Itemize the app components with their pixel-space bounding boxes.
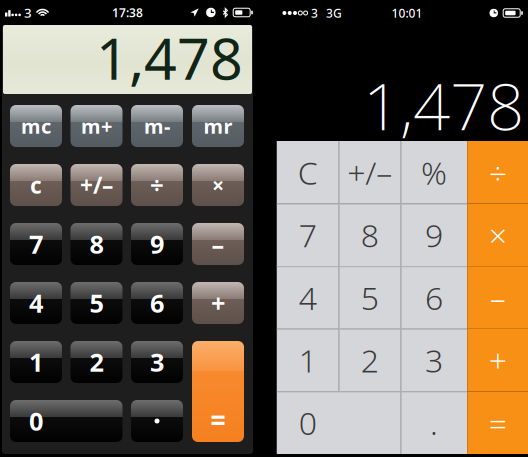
staticText: 8: [361, 214, 379, 256]
staticText: m-: [144, 113, 170, 139]
button[interactable]: =: [467, 391, 528, 454]
button[interactable]: ×: [192, 164, 244, 206]
staticText: 3: [24, 4, 32, 21]
staticText: C: [298, 151, 318, 194]
button[interactable]: 0: [10, 400, 122, 442]
staticText: mc: [21, 113, 51, 139]
staticText: +: [211, 286, 225, 320]
staticText: +: [489, 339, 507, 381]
button[interactable]: 4: [10, 282, 62, 324]
staticText: 9: [425, 214, 443, 256]
staticText: 1,478: [96, 19, 243, 95]
staticText: 3G: [326, 5, 342, 21]
staticText: =: [489, 401, 507, 444]
staticText: 9: [150, 227, 164, 261]
staticText: 6: [425, 276, 443, 319]
staticText: +/–: [347, 151, 392, 194]
button[interactable]: +: [467, 329, 528, 391]
button[interactable]: m+: [70, 105, 122, 147]
staticText: 0: [299, 401, 317, 444]
button[interactable]: Equals: [192, 341, 244, 442]
button[interactable]: ÷: [131, 164, 183, 206]
button[interactable]: 7: [277, 204, 339, 266]
staticText: 2: [361, 339, 379, 381]
button[interactable]: 1: [10, 341, 62, 383]
button[interactable]: 8: [339, 204, 401, 266]
staticText: 3: [311, 5, 318, 21]
staticText: 5: [361, 276, 379, 319]
button[interactable]: 0: [277, 391, 401, 454]
button[interactable]: –: [467, 266, 528, 329]
staticText: 1: [299, 339, 317, 381]
staticText: c: [30, 170, 42, 200]
staticText: 17:38: [112, 4, 143, 20]
button[interactable]: +/–: [339, 141, 401, 204]
staticText: ×: [212, 171, 224, 199]
button[interactable]: C: [277, 141, 339, 204]
staticText: ×: [489, 214, 507, 256]
button[interactable]: 4: [277, 266, 339, 329]
staticText: –: [211, 227, 224, 261]
button[interactable]: 1: [277, 329, 339, 391]
button[interactable]: +/–: [70, 164, 122, 206]
staticText: m+: [81, 113, 112, 139]
staticText: –: [490, 276, 506, 319]
button[interactable]: mc: [10, 105, 62, 147]
button[interactable]: 9: [401, 204, 467, 266]
staticText: 7: [29, 227, 43, 261]
staticText: 8: [89, 227, 103, 261]
staticText: 4: [29, 286, 43, 320]
button[interactable]: 2: [70, 341, 122, 383]
button[interactable]: 6: [401, 266, 467, 329]
staticText: 6: [150, 286, 164, 320]
button[interactable]: –: [192, 223, 244, 265]
button[interactable]: mr: [192, 105, 244, 147]
button[interactable]: 5: [339, 266, 401, 329]
staticText: 10:01: [391, 5, 422, 21]
button[interactable]: ÷: [467, 141, 528, 204]
staticText: 1,478: [363, 62, 524, 148]
button[interactable]: 3: [131, 341, 183, 383]
staticText: 1: [29, 345, 43, 379]
staticText: 3: [425, 339, 443, 381]
staticText: 2: [89, 345, 103, 379]
button[interactable]: ×: [467, 204, 528, 266]
staticText: 7: [299, 214, 317, 256]
button[interactable]: 8: [70, 223, 122, 265]
button[interactable]: Decimal point: [131, 400, 183, 442]
staticText: 4: [299, 276, 317, 319]
staticText: 0: [29, 404, 43, 438]
staticText: ÷: [150, 169, 164, 201]
button[interactable]: m-: [131, 105, 183, 147]
button[interactable]: .: [401, 391, 467, 454]
button[interactable]: 3: [401, 329, 467, 391]
staticText: ÷: [489, 151, 507, 194]
button[interactable]: 2: [339, 329, 401, 391]
staticText: .: [430, 401, 438, 444]
button[interactable]: 6: [131, 282, 183, 324]
staticText: mr: [203, 113, 232, 139]
button[interactable]: +: [192, 282, 244, 324]
staticText: +/–: [80, 170, 113, 200]
staticText: %: [421, 151, 447, 194]
button[interactable]: c: [10, 164, 62, 206]
button[interactable]: %: [401, 141, 467, 204]
staticText: 5: [89, 286, 103, 320]
button[interactable]: 5: [70, 282, 122, 324]
button[interactable]: 9: [131, 223, 183, 265]
button[interactable]: 7: [10, 223, 62, 265]
staticText: 3: [150, 345, 164, 379]
